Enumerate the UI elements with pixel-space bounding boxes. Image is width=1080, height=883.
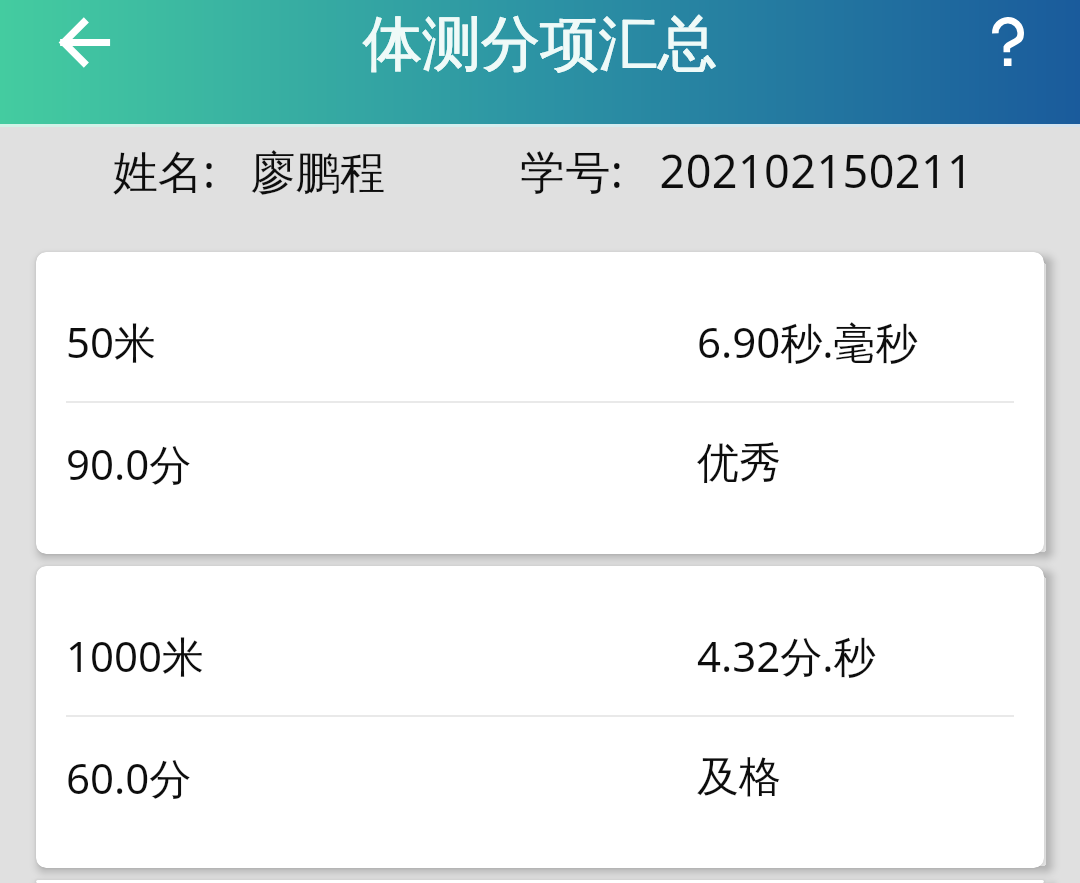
button[interactable]: Help xyxy=(960,0,1056,83)
staticText: 学号: 202102150211 xyxy=(520,140,974,201)
staticText: 优秀 xyxy=(697,437,781,490)
staticText: 50米 xyxy=(66,313,157,370)
staticText: 姓名: 廖鹏程 xyxy=(113,140,386,201)
staticText: 6.90秒.毫秒 xyxy=(697,313,918,370)
staticText: 体测分项汇总 xyxy=(363,7,717,81)
staticText: 4.32分.秒 xyxy=(697,627,876,684)
staticText: 90.0分 xyxy=(66,435,192,492)
staticText: 及格 xyxy=(697,751,781,804)
staticText: 1000米 xyxy=(66,627,205,684)
button[interactable]: Back xyxy=(36,0,132,84)
button[interactable]: 50米 xyxy=(36,252,1044,554)
staticText: 体测分项汇总 xyxy=(363,7,717,81)
button[interactable]: 1000米 xyxy=(36,566,1044,868)
staticText: 60.0分 xyxy=(66,749,192,806)
